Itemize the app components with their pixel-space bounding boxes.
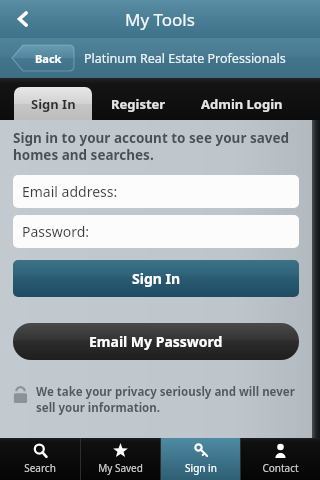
staticText: Sign in [185,461,217,475]
button[interactable]: Admin Login [184,87,300,120]
staticText: Sign In [31,95,76,113]
staticText: Admin Login [201,95,283,113]
staticText: Register [111,95,166,113]
staticText: Contact [262,461,299,475]
staticText: Password: [22,222,90,241]
button[interactable]: Sign In [13,260,299,297]
button[interactable]: Email address: [13,175,299,208]
button[interactable]: Email My Password [13,323,299,360]
button[interactable]: Back [0,0,46,38]
button[interactable]: Back [12,45,74,71]
button[interactable]: Contact [241,438,320,480]
button[interactable]: Sign in [161,438,240,480]
staticText: My Tools [125,8,195,31]
staticText: Email My Password [89,332,223,351]
button[interactable]: Search [0,438,80,480]
staticText: Sign In [132,269,181,288]
button[interactable]: Password: [13,215,299,248]
button[interactable]: Sign In [14,87,92,120]
staticText: Email address: [22,182,118,201]
staticText: Back [35,51,62,66]
button[interactable]: My Saved [81,438,160,480]
staticText: We take your privacy seriously and will … [36,384,299,415]
staticText: Platinum Real Estate Professionals [84,50,286,67]
staticText: My Saved [98,461,143,475]
button[interactable]: Register [92,87,184,120]
staticText: Sign in to your account to see your save… [13,129,299,164]
staticText: Search [24,461,56,475]
